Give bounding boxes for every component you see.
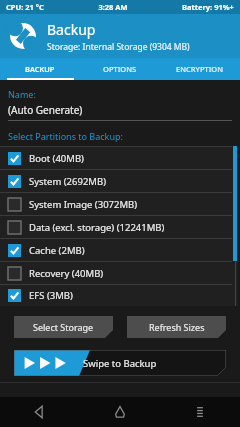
button[interactable]: Refresh Sizes bbox=[127, 316, 226, 338]
button[interactable]: Select Storage bbox=[14, 316, 113, 338]
button[interactable]: Home bbox=[80, 397, 160, 427]
staticText: Select Storage bbox=[33, 321, 94, 333]
button[interactable]: Back bbox=[0, 397, 80, 427]
button[interactable]: Cache (2MB) bbox=[0, 239, 232, 261]
button[interactable]: BACKUP bbox=[0, 58, 80, 80]
button[interactable]: System (2692MB) bbox=[0, 170, 232, 192]
button[interactable]: EFS (3MB) bbox=[0, 285, 232, 306]
button[interactable]: ENCRYPTION bbox=[160, 58, 240, 80]
staticText: Backup bbox=[47, 20, 96, 39]
staticText: Cache (2MB) bbox=[29, 244, 85, 257]
staticText: Recovery (40MB) bbox=[29, 267, 104, 280]
staticText: Swipe to Backup bbox=[83, 357, 157, 370]
staticText: Battery: 91%+ bbox=[182, 2, 234, 12]
button[interactable]: OPTIONS bbox=[80, 58, 160, 80]
staticText: ENCRYPTION bbox=[176, 64, 224, 74]
staticText: Boot (40MB) bbox=[29, 152, 84, 165]
staticText: (Auto Generate) bbox=[8, 103, 83, 117]
staticText: Refresh Sizes bbox=[149, 321, 205, 333]
staticText: Select Partitions to Backup: bbox=[8, 130, 123, 142]
button[interactable]: Swipe to Backup bbox=[14, 350, 226, 376]
button[interactable]: (Auto Generate) bbox=[8, 103, 232, 121]
button[interactable]: Backup bbox=[0, 14, 240, 58]
button[interactable]: System Image (3072MB) bbox=[0, 193, 232, 215]
staticText: 3:28 AM bbox=[44, 2, 182, 12]
staticText: EFS (3MB) bbox=[29, 289, 73, 302]
button[interactable]: Boot (40MB) bbox=[0, 147, 232, 169]
staticText: System Image (3072MB) bbox=[29, 198, 138, 211]
staticText: Name: bbox=[8, 88, 36, 100]
staticText: CPU: 21 °C bbox=[6, 2, 44, 12]
staticText: Data (excl. storage) (12241MB) bbox=[29, 221, 165, 234]
staticText: BACKUP bbox=[25, 64, 55, 74]
button[interactable]: Recovery (40MB) bbox=[0, 262, 232, 284]
button[interactable]: Recent apps bbox=[160, 397, 240, 427]
staticText: OPTIONS bbox=[103, 64, 137, 74]
button[interactable]: Data (excl. storage) (12241MB) bbox=[0, 216, 232, 238]
staticText: Storage: Internal Storage (9304 MB) bbox=[47, 41, 190, 53]
staticText: System (2692MB) bbox=[29, 175, 106, 188]
